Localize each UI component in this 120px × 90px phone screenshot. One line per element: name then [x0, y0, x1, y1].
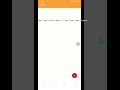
button[interactable]: Compose: [72, 73, 77, 78]
button[interactable]: Mail: [38, 80, 48, 90]
button[interactable]: Inbox: [38, 0, 81, 8]
button[interactable]: Message: [38, 18, 81, 24]
button[interactable]: Next screenshot: [84, 0, 107, 90]
